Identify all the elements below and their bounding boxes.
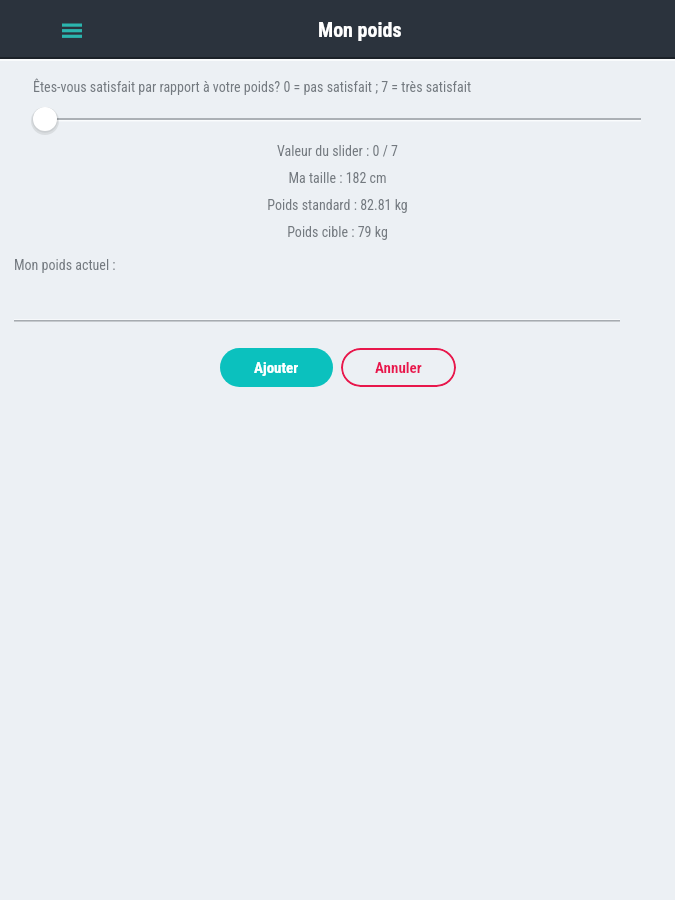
staticText: Ma taille : 182 cm <box>288 170 387 186</box>
staticText: Mon poids <box>318 18 402 41</box>
staticText: Ajouter <box>254 359 299 377</box>
staticText: Mon poids actuel : <box>14 257 116 273</box>
staticText: Annuler <box>375 359 422 377</box>
button[interactable]: Annuler <box>341 348 456 387</box>
staticText: Poids standard : 82.81 kg <box>267 197 408 213</box>
staticText: Poids cible : 79 kg <box>287 224 388 240</box>
button[interactable]: Ajouter <box>220 348 333 387</box>
staticText: Valeur du slider : 0 / 7 <box>277 143 398 159</box>
staticText: Êtes-vous satisfait par rapport à votre … <box>33 79 472 95</box>
button[interactable]: Menu <box>54 12 90 48</box>
